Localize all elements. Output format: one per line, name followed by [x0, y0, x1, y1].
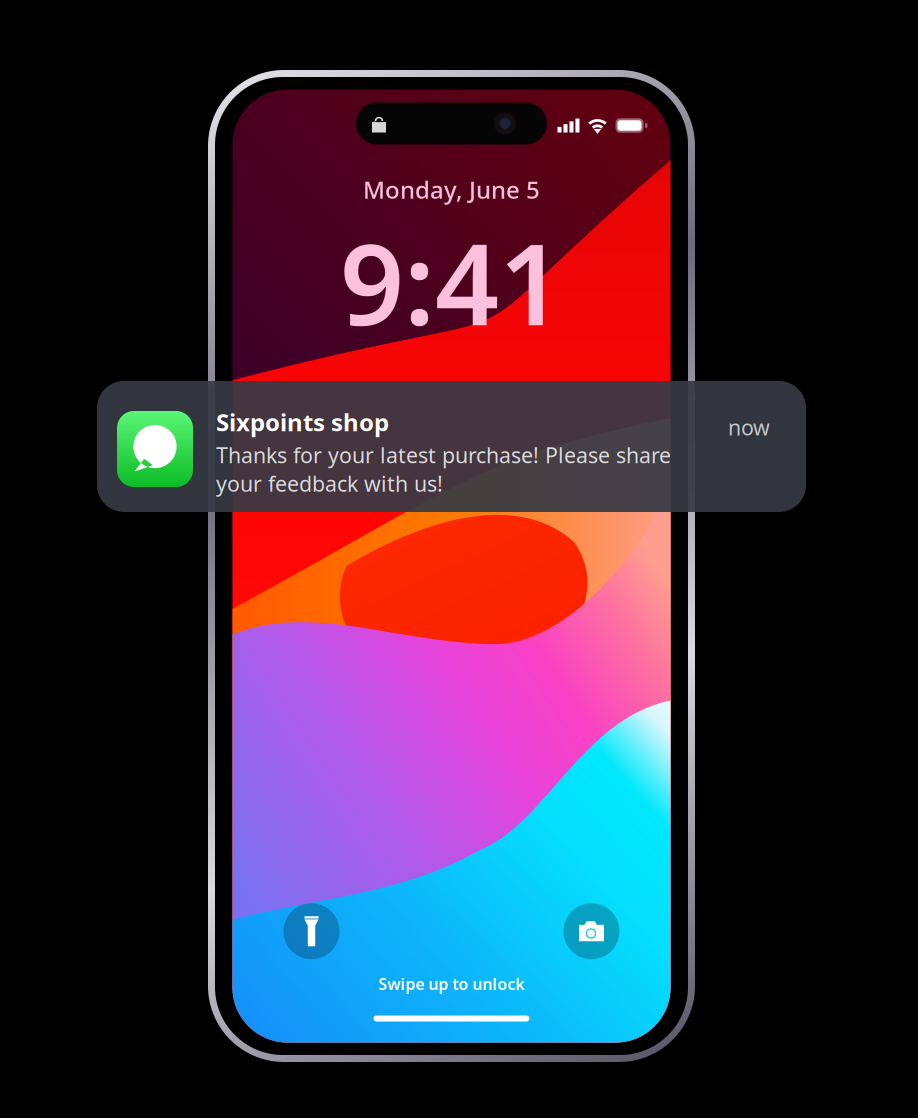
staticText: Sixpoints shop: [216, 406, 389, 438]
button[interactable]: Camera: [563, 903, 619, 959]
button[interactable]: Sixpoints shop: [97, 381, 806, 512]
staticText: Thanks for your latest purchase! Please …: [216, 441, 671, 498]
staticText: Swipe up to unlock: [378, 973, 524, 994]
staticText: Monday, June 5: [363, 173, 540, 205]
staticText: now: [728, 413, 770, 441]
button[interactable]: Flashlight: [283, 903, 339, 959]
staticText: 9:41: [340, 207, 563, 356]
